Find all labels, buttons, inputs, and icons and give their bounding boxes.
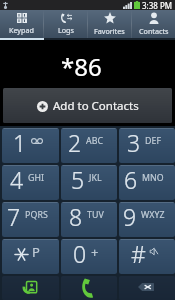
staticText: # [131, 238, 146, 269]
staticText: PQRS [25, 209, 48, 221]
button[interactable]: Video call [0, 274, 59, 300]
staticText: 3:38 PM [142, 0, 173, 10]
button[interactable]: 2 [59, 126, 117, 163]
staticText: 4 [10, 164, 24, 195]
staticText: Logs [58, 25, 74, 35]
button[interactable]: Favorites [88, 10, 131, 38]
button[interactable]: Add to Contacts [3, 88, 172, 123]
staticText: 0 [73, 238, 87, 269]
staticText: 8 [69, 201, 83, 232]
staticText: P [32, 243, 40, 261]
button[interactable]: 9 [117, 200, 175, 237]
button[interactable]: Keypad [0, 10, 43, 38]
button[interactable]: 8 [59, 200, 117, 237]
staticText: 9 [123, 201, 137, 232]
staticText: JKL [89, 172, 102, 184]
button[interactable]: Contacts [132, 10, 175, 38]
staticText: WXYZ [141, 209, 165, 221]
staticText: *86 [61, 50, 102, 83]
staticText: Add to Contacts [53, 98, 139, 114]
staticText: ABC [86, 135, 104, 147]
button[interactable]: 1 [0, 126, 59, 163]
button[interactable]: 6 [117, 163, 175, 200]
staticText: 2 [68, 127, 82, 158]
button[interactable]: 3 [117, 126, 175, 163]
staticText: 6 [124, 164, 138, 195]
staticText: DEF [145, 135, 162, 147]
staticText: Contacts [139, 26, 169, 36]
button[interactable]: Delete [117, 274, 175, 300]
button[interactable]: 5 [59, 163, 117, 200]
staticText: 3 [127, 127, 141, 158]
staticText: Keypad [9, 25, 34, 35]
button[interactable]: Call [59, 274, 117, 300]
button[interactable]: P [0, 237, 59, 274]
button[interactable]: Logs [44, 10, 87, 38]
staticText: TUV [87, 209, 104, 221]
staticText: Favorites [94, 26, 125, 36]
button[interactable]: # [117, 237, 175, 274]
staticText: + [91, 243, 99, 261]
button[interactable]: 7 [0, 200, 59, 237]
staticText: GHI [28, 172, 45, 184]
button[interactable]: 4 [0, 163, 59, 200]
staticText: MNO [142, 172, 164, 184]
staticText: 1 [13, 127, 27, 158]
staticText: 5 [71, 164, 85, 195]
button[interactable]: 0 [59, 237, 117, 274]
staticText: 7 [7, 201, 21, 232]
